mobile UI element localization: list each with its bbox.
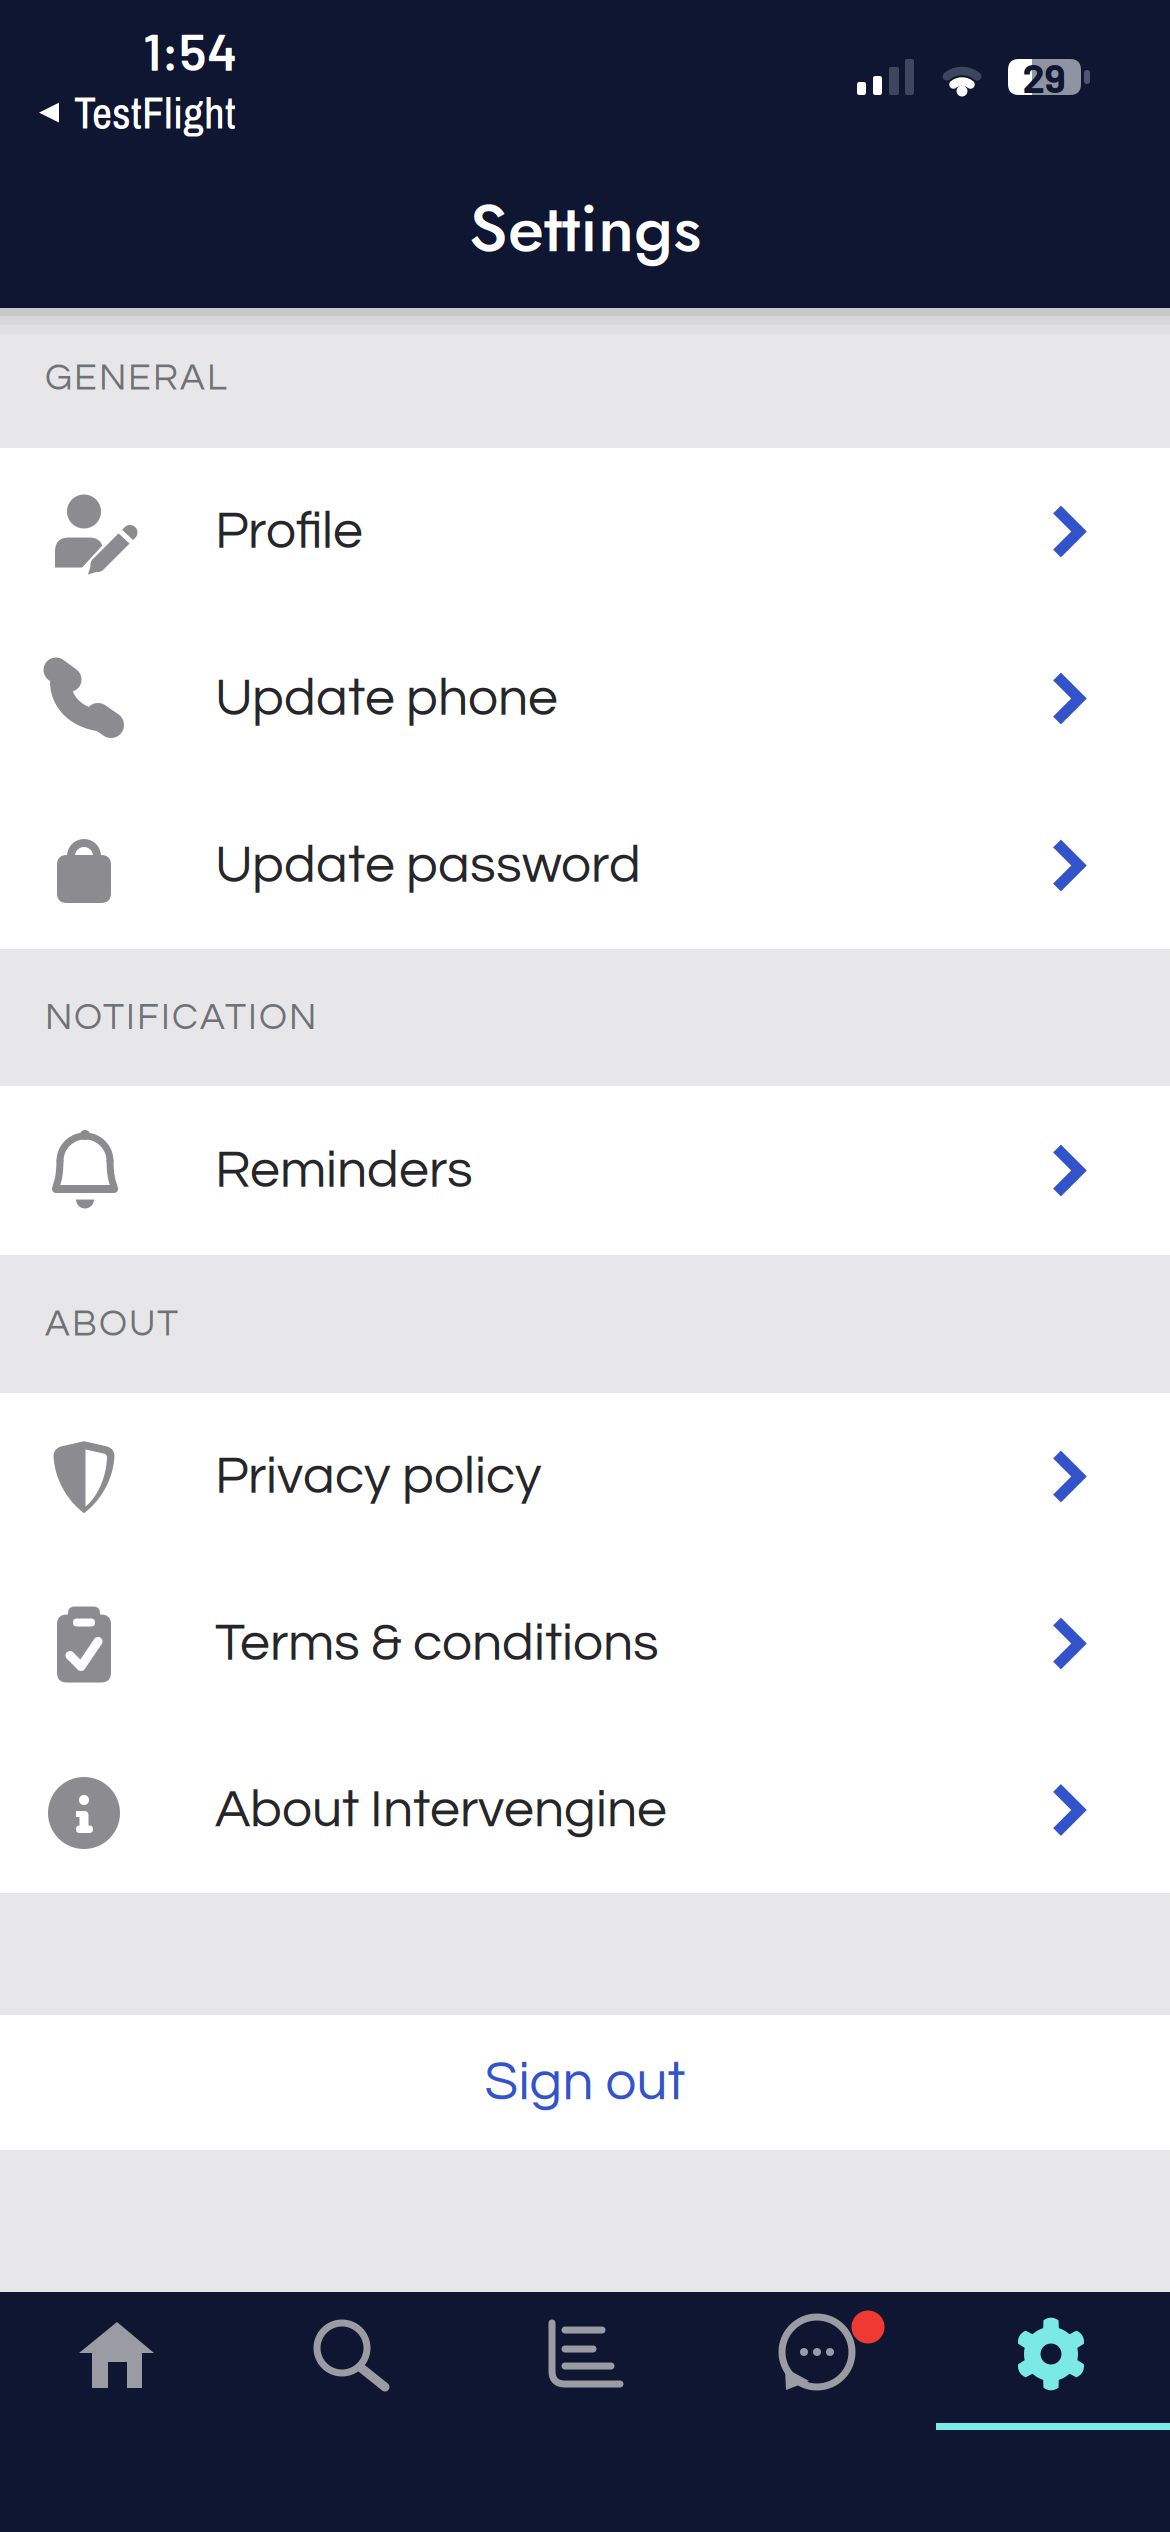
button[interactable]: Update password [0,782,1170,949]
button[interactable]: Search [234,2292,468,2532]
staticText: Sign out [484,2054,685,2111]
staticText: About Intervengine [215,1782,667,1837]
staticText: GENERAL [45,359,227,397]
button[interactable]: Update phone [0,615,1170,782]
button[interactable]: About Intervengine [0,1727,1170,1893]
staticText: Reminders [215,1143,473,1198]
staticText: Privacy policy [215,1449,542,1504]
staticText: Terms & conditions [215,1616,659,1671]
button[interactable]: Reminders [0,1086,1170,1255]
button[interactable]: Settings [936,2292,1170,2532]
button[interactable]: Profile [0,448,1170,615]
button[interactable]: Sign out [0,2015,1170,2150]
staticText: 1:54 [143,19,237,81]
button[interactable]: Home [0,2292,234,2532]
staticText: TestFlight [74,83,236,142]
staticText: Update password [215,838,641,893]
staticText: Settings [469,180,701,276]
button[interactable]: Privacy policy [0,1393,1170,1560]
button[interactable]: Terms & conditions [0,1560,1170,1727]
staticText: NOTIFICATION [45,998,316,1037]
staticText: 29 [1022,53,1065,101]
staticText: Update phone [215,671,558,726]
staticText: ABOUT [45,1305,178,1343]
staticText: Profile [215,504,363,559]
button[interactable]: Statistics [468,2292,702,2532]
button[interactable]: Back to TestFlight [39,83,236,142]
button[interactable]: Messages [702,2292,936,2532]
